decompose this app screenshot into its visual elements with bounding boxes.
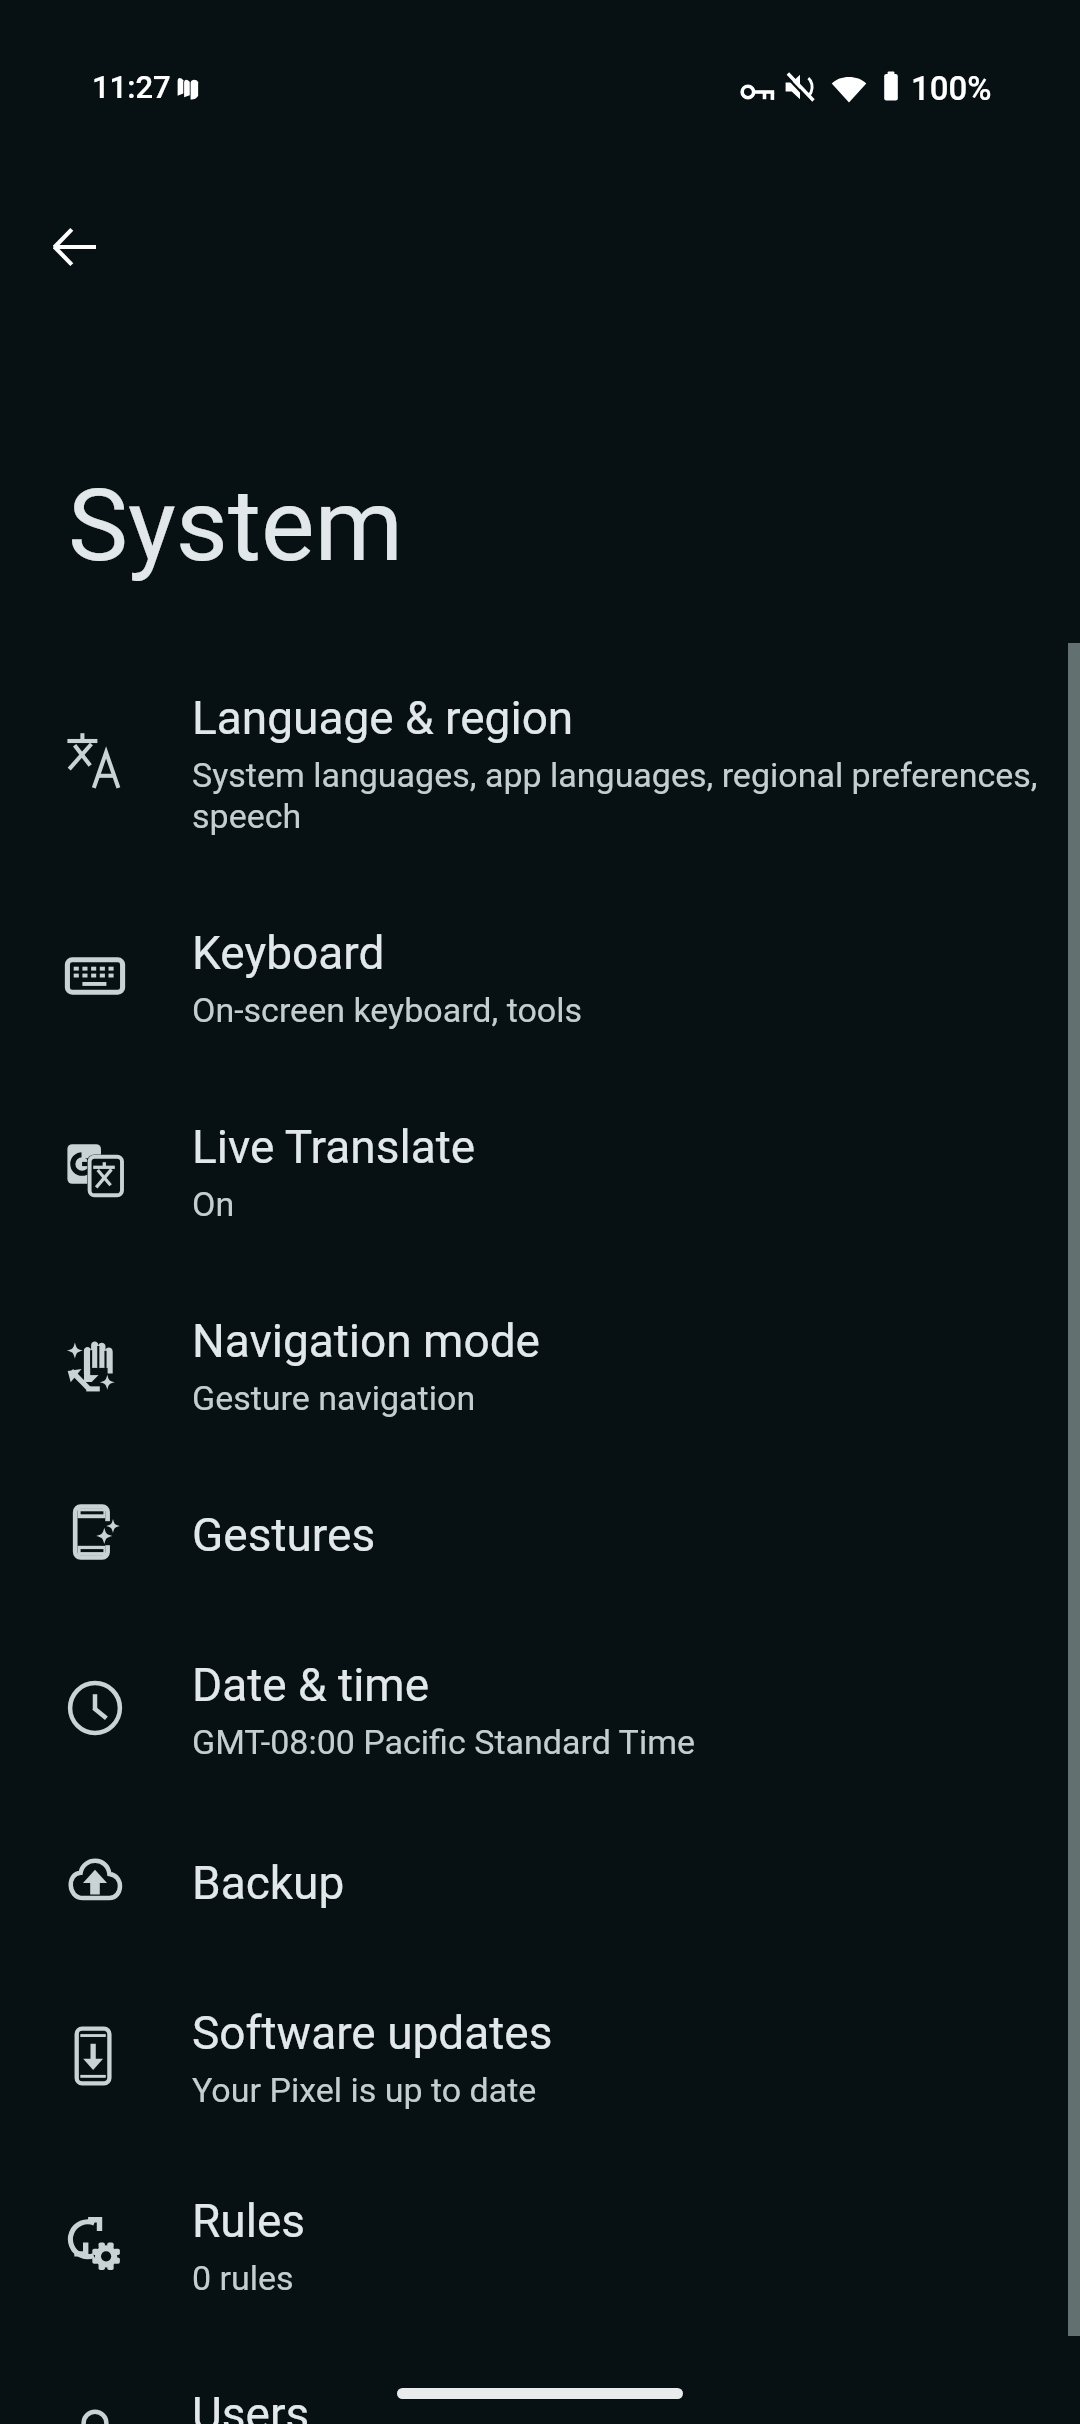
staticText: Gesture navigation	[192, 1378, 476, 1418]
staticText: Gestures	[192, 1508, 376, 1562]
button[interactable]: Software updates	[0, 1970, 1080, 2148]
staticText: Software updates	[192, 2006, 553, 2060]
button[interactable]: Backup	[0, 1820, 1080, 1946]
staticText: Live Translate	[192, 1120, 476, 1174]
staticText: System languages, app languages, regiona…	[192, 755, 1072, 836]
button[interactable]: Navigation mode	[0, 1278, 1080, 1456]
button[interactable]: Users	[0, 2351, 1080, 2424]
staticText: System	[68, 466, 404, 584]
staticText: Date & time	[192, 1658, 430, 1712]
button[interactable]: Live Translate	[0, 1084, 1080, 1262]
staticText: Navigation mode	[192, 1314, 541, 1368]
button[interactable]: Keyboard	[0, 890, 1080, 1068]
staticText: On	[192, 1184, 235, 1224]
staticText: Rules	[192, 2194, 306, 2248]
staticText: Your Pixel is up to date	[192, 2070, 537, 2110]
button[interactable]: Language & region	[0, 655, 1080, 874]
staticText: Keyboard	[192, 926, 385, 980]
staticText: Language & region	[192, 691, 574, 745]
staticText: 11:27	[92, 69, 171, 105]
button[interactable]: Date & time	[0, 1622, 1080, 1800]
staticText: On-screen keyboard, tools	[192, 990, 583, 1030]
staticText: GMT-08:00 Pacific Standard Time	[192, 1722, 695, 1762]
button[interactable]: Navigate up	[26, 199, 122, 295]
staticText: Backup	[192, 1856, 345, 1910]
button[interactable]: Rules	[0, 2158, 1080, 2336]
button[interactable]: Gestures	[0, 1472, 1080, 1598]
staticText: 100%	[911, 69, 992, 108]
staticText: Users	[192, 2387, 310, 2424]
staticText: 0 rules	[192, 2258, 294, 2298]
